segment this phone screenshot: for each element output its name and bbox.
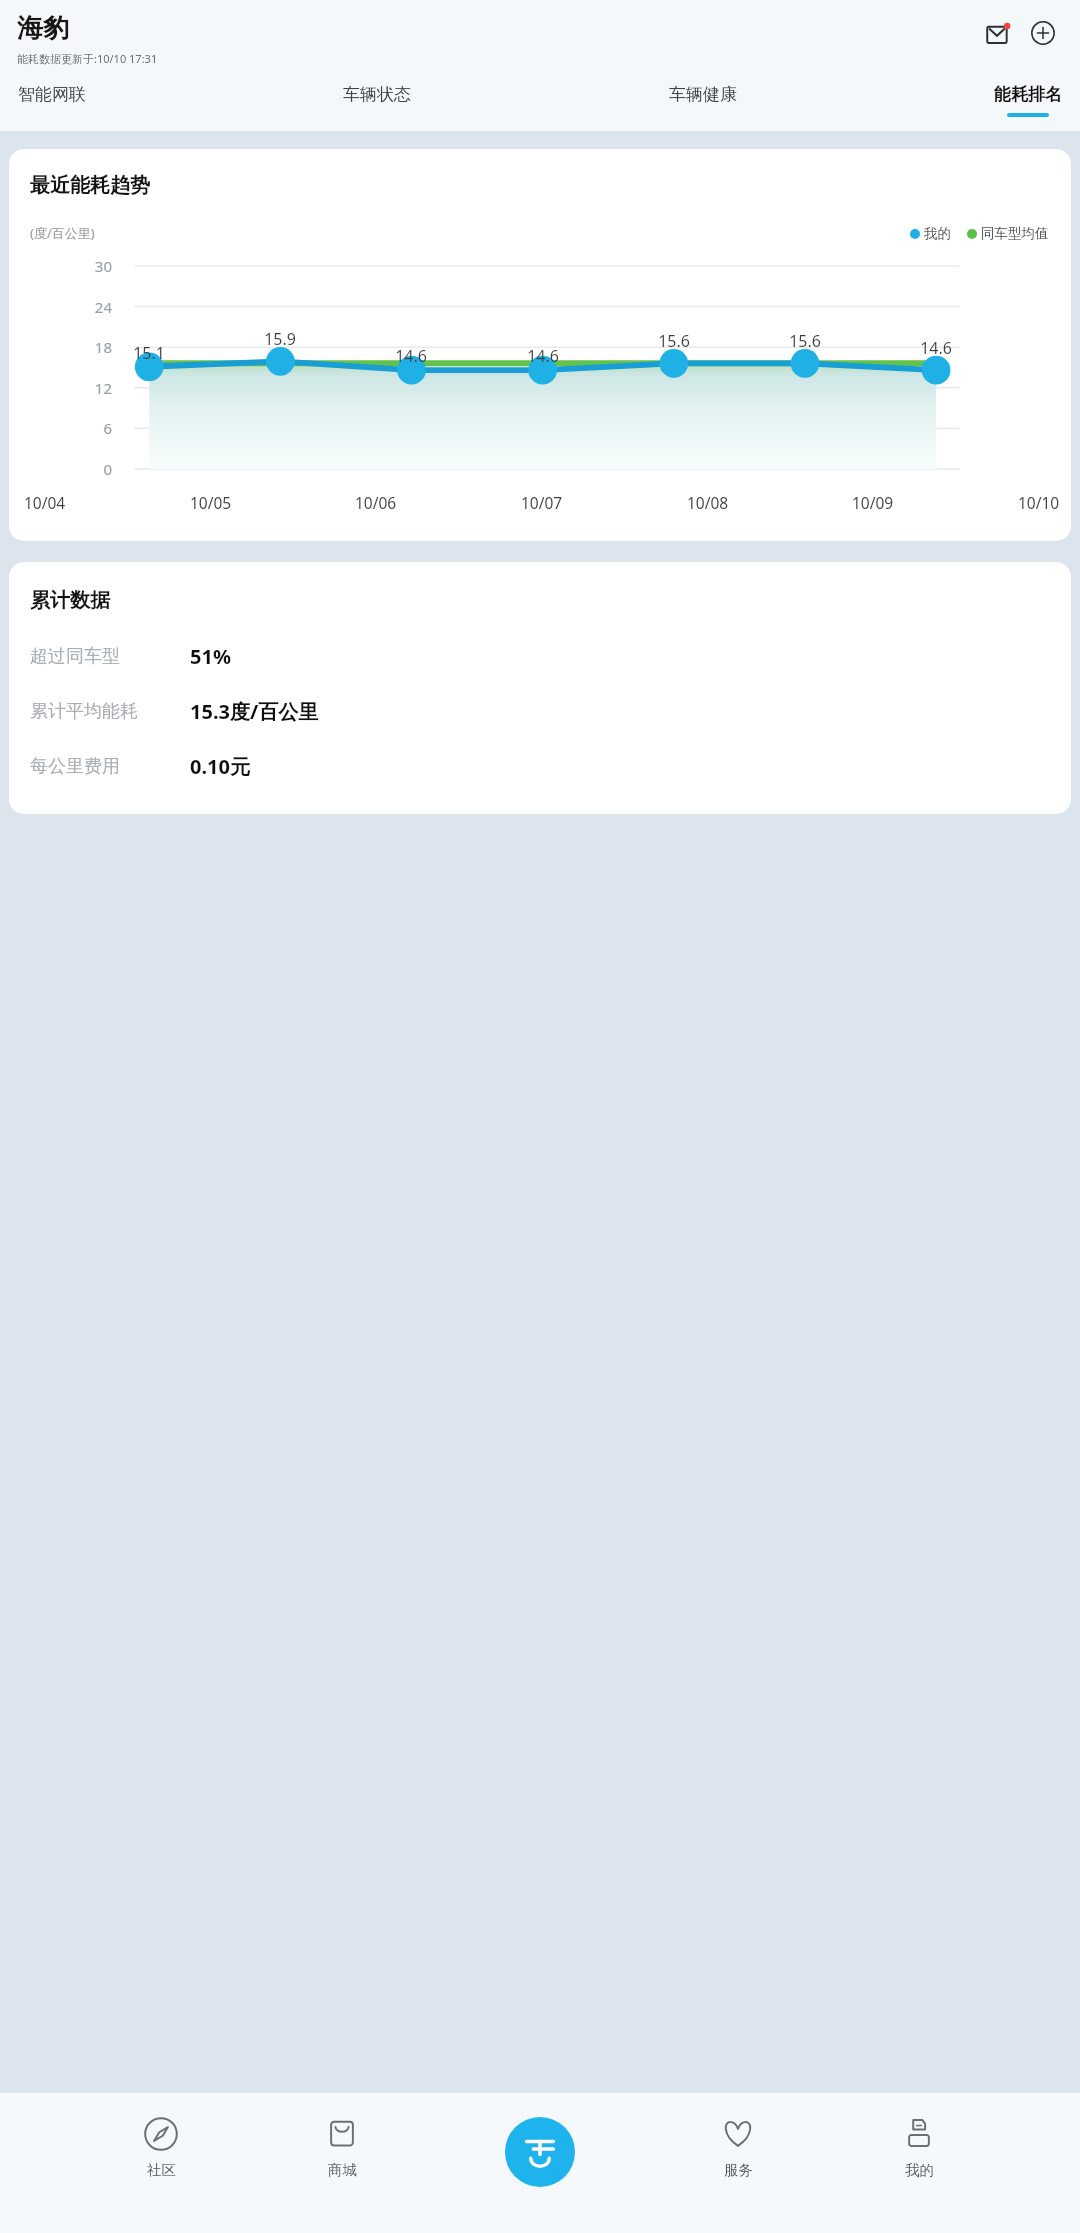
staticText: 24 (72, 297, 112, 317)
staticText: 15.6 (644, 330, 704, 352)
staticText: 每公里费用 (30, 755, 120, 778)
staticText: 超过同车型 (30, 645, 120, 668)
button[interactable]: Profile (894, 2117, 944, 2179)
button[interactable]: 智能网联 (13, 82, 91, 119)
button[interactable]: Add (1020, 10, 1066, 56)
staticText: 10/06 (355, 492, 397, 513)
staticText: 累计平均能耗 (30, 700, 138, 723)
staticText: 6 (72, 418, 112, 438)
button[interactable]: 车辆健康 (664, 82, 742, 119)
staticText: 车辆健康 (669, 84, 737, 105)
staticText: 商城 (328, 2161, 357, 2179)
button[interactable]: Shop (317, 2117, 367, 2179)
other: Community (144, 2117, 178, 2151)
staticText: 智能网联 (18, 84, 86, 105)
staticText: 10/09 (852, 492, 894, 513)
staticText: 18 (72, 337, 112, 357)
other: Services (721, 2117, 755, 2151)
staticText: 能耗排名 (994, 84, 1062, 105)
staticText: 车辆状态 (343, 84, 411, 105)
staticText: 累计数据 (30, 588, 110, 613)
staticText: 10/04 (24, 492, 66, 513)
button[interactable]: 车辆状态 (338, 82, 416, 119)
staticText: 海豹 (17, 12, 69, 45)
staticText: (度/百公里) (30, 224, 95, 242)
staticText: 能耗数据更新于:10/10 17:31 (17, 51, 158, 66)
staticText: 10/08 (687, 492, 729, 513)
staticText: 我的 (924, 225, 951, 242)
staticText: 51% (190, 643, 231, 670)
staticText: 社区 (147, 2161, 176, 2179)
staticText: 0 (72, 459, 112, 479)
staticText: 15.1 (119, 342, 179, 364)
staticText: 服务 (724, 2161, 753, 2179)
staticText: 30 (72, 256, 112, 276)
staticText: 10/05 (190, 492, 232, 513)
staticText: 14.6 (381, 345, 441, 367)
other: Shop (325, 2117, 359, 2151)
staticText: 14.6 (906, 337, 966, 359)
staticText: 10/07 (521, 492, 563, 513)
staticText: 14.6 (513, 345, 573, 367)
staticText: 15.6 (775, 330, 835, 352)
other: Profile (902, 2117, 936, 2151)
button[interactable]: Services (713, 2117, 763, 2179)
staticText: 10/10 (1018, 492, 1060, 513)
button[interactable]: Messages (974, 10, 1020, 56)
button[interactable]: Community (136, 2117, 186, 2179)
staticText: 15.3度/百公里 (190, 698, 319, 725)
staticText: 15.9 (250, 328, 310, 350)
button[interactable]: 能耗排名 (989, 82, 1067, 119)
staticText: 最近能耗趋势 (30, 173, 150, 198)
staticText: 我的 (905, 2161, 934, 2179)
staticText: 同车型均值 (981, 225, 1049, 242)
staticText: 12 (72, 378, 112, 398)
button[interactable]: Home (505, 2117, 575, 2187)
staticText: 0.10元 (190, 753, 250, 780)
